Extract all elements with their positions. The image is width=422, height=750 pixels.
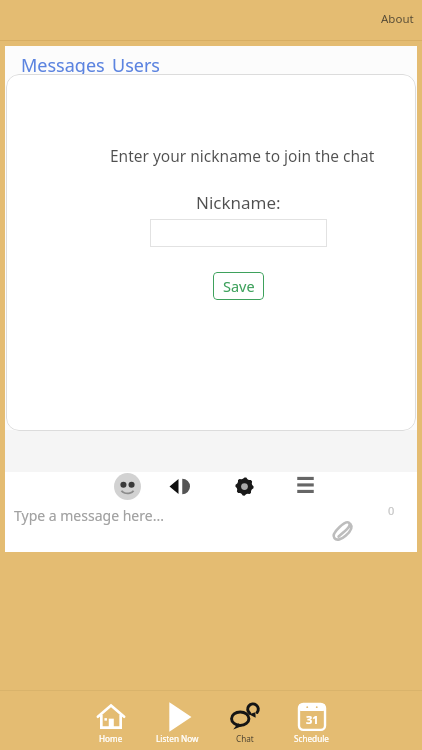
button[interactable] <box>150 219 327 247</box>
staticText: Listen Now <box>156 733 199 744</box>
staticText: Chat <box>236 733 254 744</box>
button[interactable]: Settings <box>232 474 257 499</box>
staticText: 31 <box>306 712 319 727</box>
button[interactable]: 31 <box>278 690 345 750</box>
button[interactable]: Sound <box>167 474 192 499</box>
staticText: Save <box>223 276 255 296</box>
button[interactable]: Chat <box>211 690 278 750</box>
staticText: Users <box>112 53 160 78</box>
button[interactable]: Listen Now <box>144 690 211 750</box>
button[interactable]: Messages <box>21 53 105 78</box>
button[interactable]: Home <box>77 690 144 750</box>
staticText: Schedule <box>294 733 329 744</box>
staticText: 0 <box>388 503 395 518</box>
staticText: Messages <box>21 53 105 78</box>
button[interactable]: Attach file <box>330 516 356 542</box>
staticText: Home <box>99 733 123 744</box>
button[interactable]: Save <box>213 272 264 300</box>
staticText: Nickname: <box>196 191 281 214</box>
button[interactable]: About <box>375 7 420 31</box>
button[interactable]: Menu <box>293 474 318 499</box>
staticText: Type a message here... <box>14 506 164 525</box>
staticText: About <box>381 11 414 27</box>
button[interactable]: Emoji <box>113 472 142 501</box>
staticText: Enter your nickname to join the chat <box>110 145 375 166</box>
button[interactable]: Users <box>112 53 160 78</box>
